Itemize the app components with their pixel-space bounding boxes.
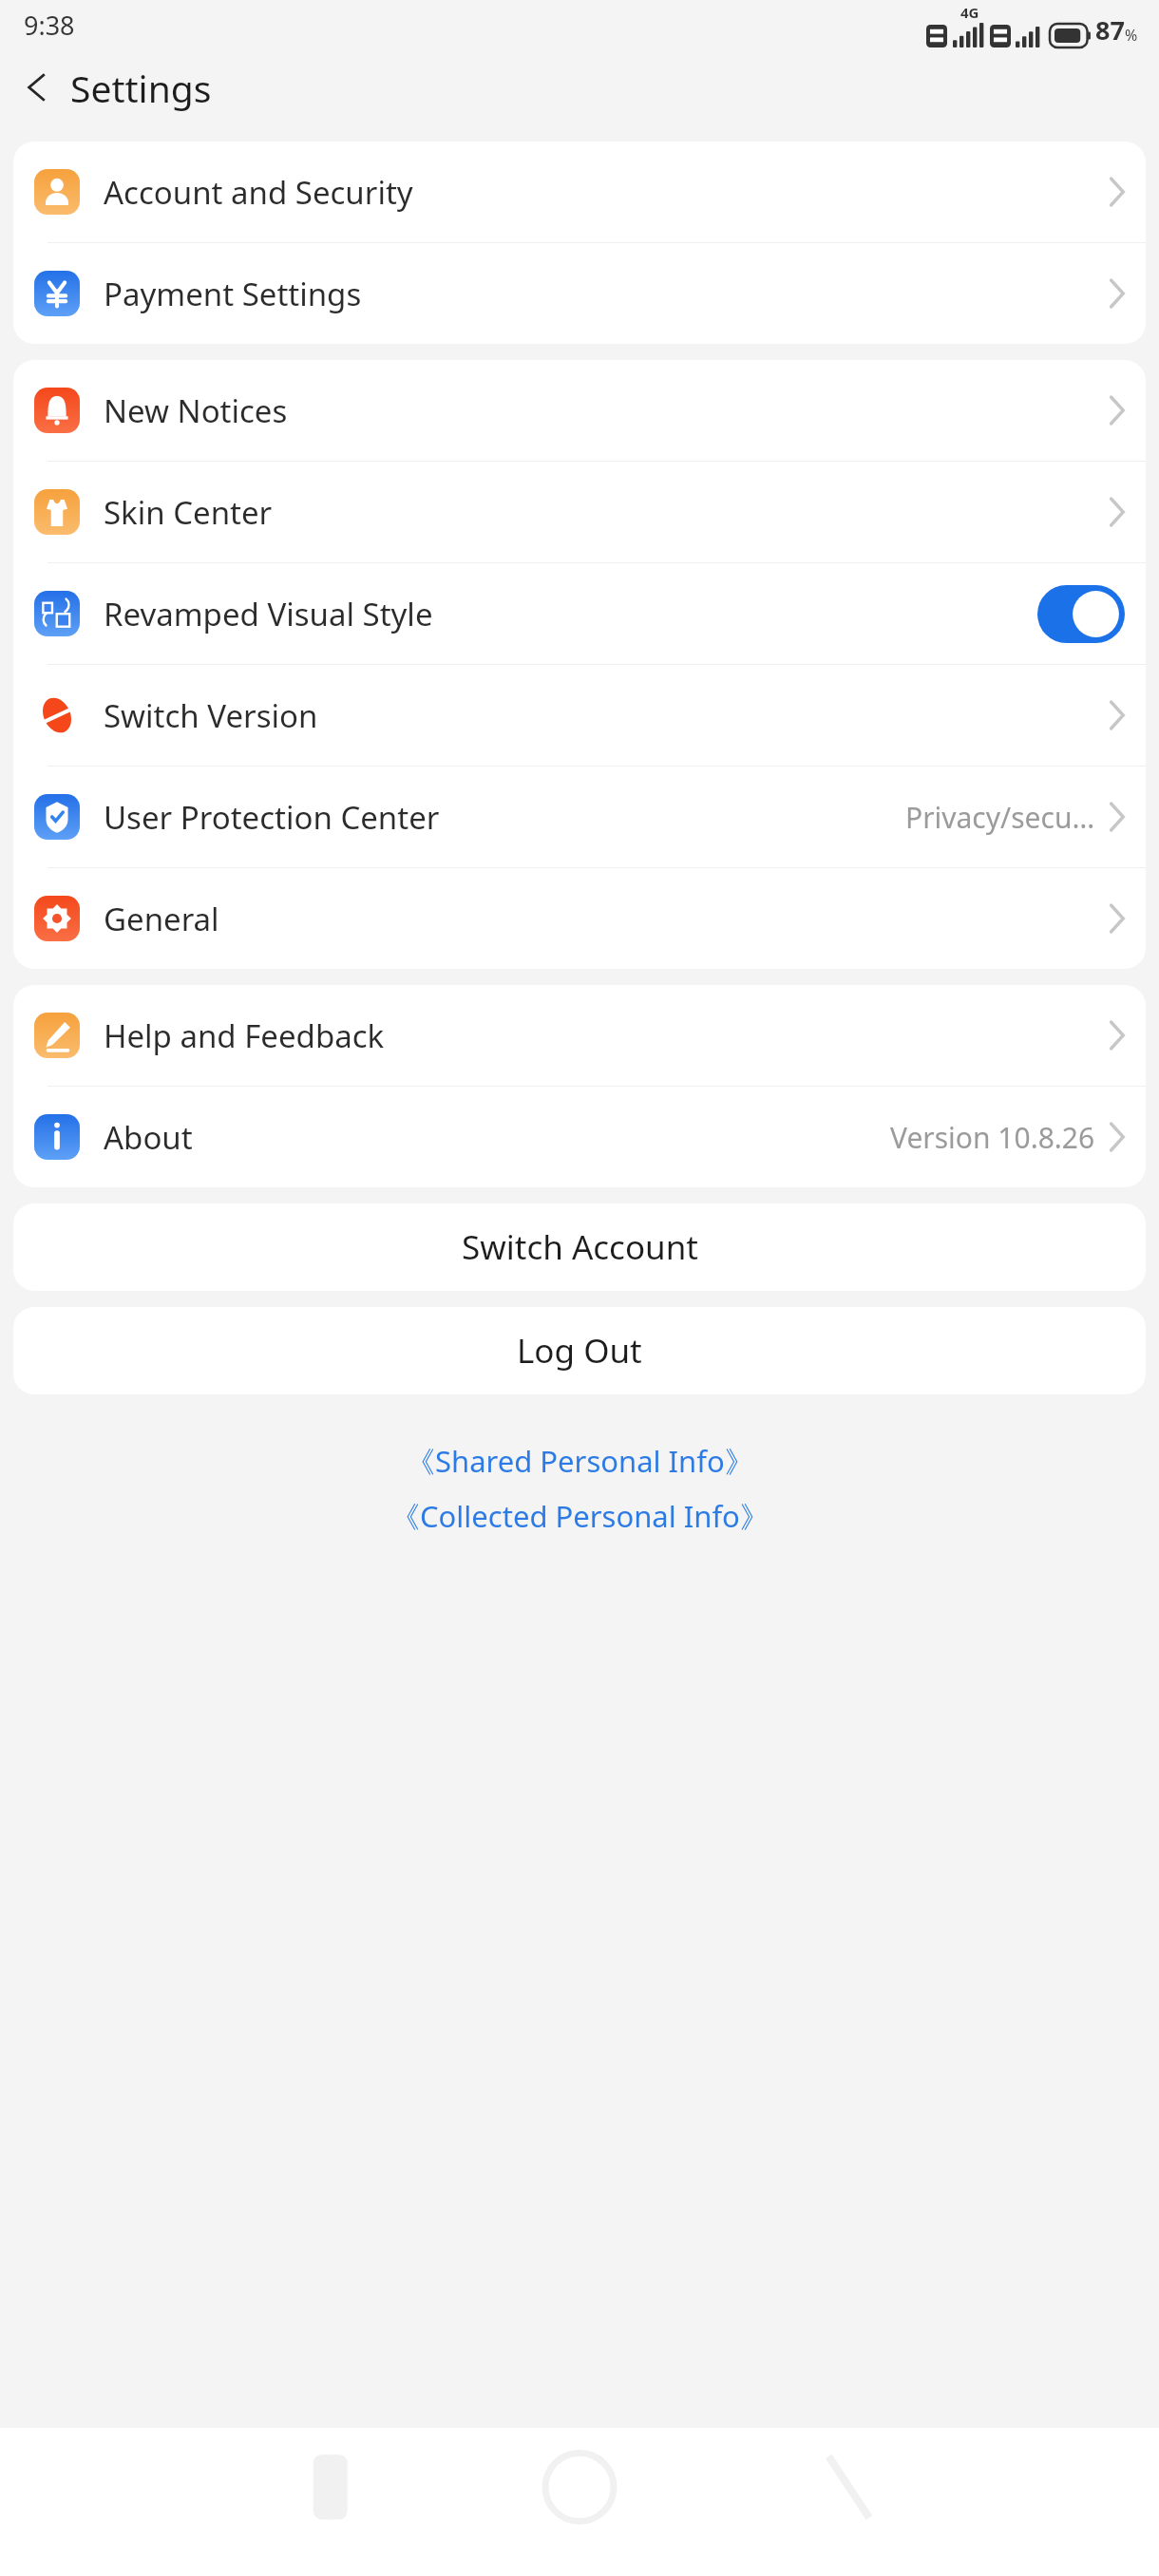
staticText: 9:38: [24, 8, 75, 43]
staticText: 4G: [960, 3, 979, 22]
staticText: %: [1125, 25, 1138, 46]
button[interactable]: About: [13, 1087, 1146, 1187]
button[interactable]: Back: [9, 60, 65, 115]
button[interactable]: New Notices: [13, 360, 1146, 461]
staticText: Log Out: [517, 1328, 642, 1373]
staticText: New Notices: [104, 389, 288, 432]
button[interactable]: Skin Center: [13, 462, 1146, 562]
staticText: Account and Security: [104, 171, 413, 214]
button[interactable]: Account and Security: [13, 142, 1146, 242]
staticText: Help and Feedback: [104, 1014, 385, 1057]
button[interactable]: Payment Settings: [13, 243, 1146, 344]
staticText: General: [104, 898, 219, 940]
button[interactable]: User Protection Center: [13, 767, 1146, 867]
staticText: About: [104, 1116, 193, 1159]
button[interactable]: 《Shared Personal Info》: [396, 1438, 764, 1484]
staticText: Payment Settings: [104, 273, 362, 315]
button[interactable]: Revamped Visual Style, on: [1037, 585, 1125, 643]
staticText: Revamped Visual Style: [104, 593, 433, 635]
button[interactable]: Help and Feedback: [13, 985, 1146, 1086]
button[interactable]: Switch Account: [13, 1203, 1146, 1291]
staticText: 《Shared Personal Info》: [406, 1441, 754, 1481]
button[interactable]: Log Out: [13, 1307, 1146, 1394]
staticText: 87: [1095, 12, 1125, 47]
button[interactable]: 《Collected Personal Info》: [381, 1493, 779, 1539]
staticText: Switch Account: [462, 1224, 698, 1270]
button[interactable]: General: [13, 868, 1146, 969]
button[interactable]: Revamped Visual Style: [13, 563, 1146, 664]
staticText: Privacy/secu…: [905, 798, 1095, 837]
staticText: Settings: [70, 63, 212, 113]
staticText: Switch Version: [104, 694, 318, 737]
staticText: User Protection Center: [104, 796, 440, 839]
staticText: 《Collected Personal Info》: [390, 1496, 769, 1536]
button[interactable]: Switch Version: [13, 665, 1146, 766]
staticText: Skin Center: [104, 491, 273, 534]
staticText: Version 10.8.26: [890, 1118, 1095, 1157]
